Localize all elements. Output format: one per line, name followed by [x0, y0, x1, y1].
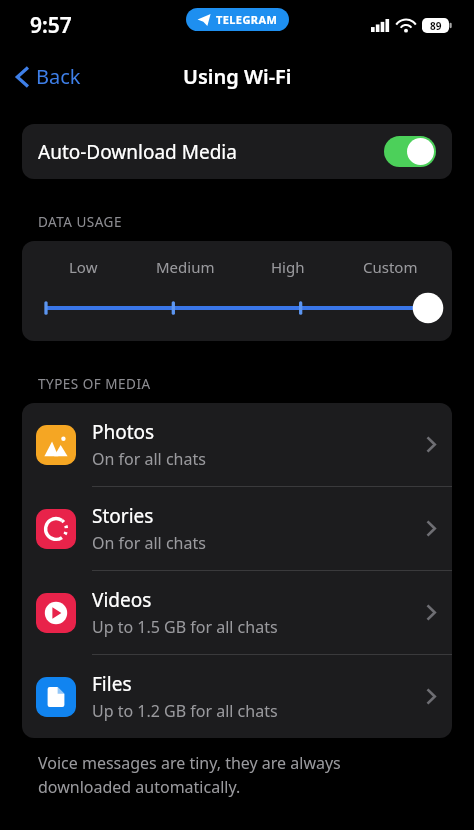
button[interactable]: Auto-Download Media [22, 124, 452, 179]
button[interactable]: Data usage slider, Custom [22, 291, 452, 325]
staticText: Files [92, 671, 132, 697]
staticText: Back [36, 63, 81, 90]
button[interactable]: Back [10, 57, 87, 96]
staticText: High [271, 257, 305, 277]
staticText: Up to 1.2 GB for all chats [92, 700, 278, 722]
staticText: Using Wi-Fi [183, 63, 292, 90]
button[interactable]: Stories [22, 487, 452, 570]
staticText: Low [69, 257, 98, 277]
staticText: 89 [430, 19, 442, 33]
staticText: TELEGRAM [216, 12, 278, 27]
staticText: Up to 1.5 GB for all chats [92, 616, 278, 638]
staticText: Stories [92, 503, 154, 529]
staticText: On for all chats [92, 448, 206, 470]
staticText: downloaded automatically. [38, 776, 241, 798]
staticText: Custom [363, 257, 418, 277]
staticText: Videos [92, 587, 152, 613]
staticText: Photos [92, 419, 155, 445]
staticText: Voice messages are tiny, they are always [38, 752, 341, 774]
staticText: On for all chats [92, 532, 206, 554]
staticText: Auto-Download Media [38, 139, 384, 165]
staticText: TYPES OF MEDIA [38, 375, 151, 393]
button[interactable]: TELEGRAM [197, 12, 278, 27]
button[interactable]: Videos [22, 571, 452, 654]
staticText: DATA USAGE [38, 213, 122, 231]
button[interactable]: Auto-Download Media toggle, on [384, 136, 436, 167]
button[interactable]: Files [22, 655, 452, 738]
staticText: Medium [156, 257, 215, 277]
button[interactable]: Photos [22, 403, 452, 486]
staticText: 9:57 [30, 11, 72, 40]
